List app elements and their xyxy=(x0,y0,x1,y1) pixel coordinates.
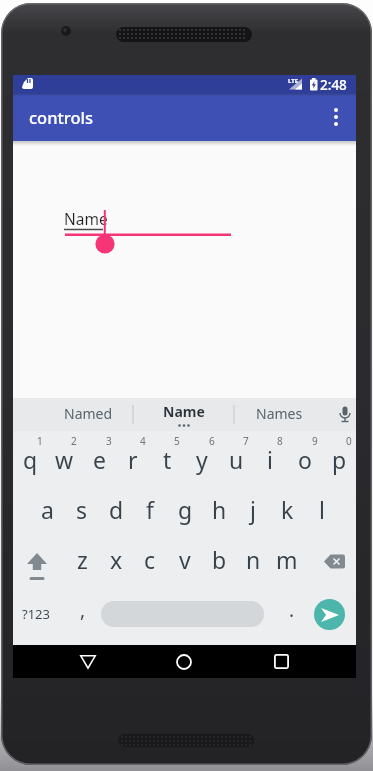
staticText: r xyxy=(128,444,138,475)
staticText: z xyxy=(77,544,88,575)
button[interactable]: k xyxy=(270,487,304,535)
staticText: ?123 xyxy=(22,605,50,623)
button[interactable]: Named xyxy=(13,398,133,431)
staticText: y xyxy=(196,444,208,475)
staticText: j xyxy=(250,494,256,525)
staticText: Names xyxy=(256,404,303,423)
staticText: b xyxy=(212,544,227,575)
button[interactable]: n xyxy=(236,537,270,585)
staticText: 8 xyxy=(277,434,283,448)
button[interactable]: j xyxy=(236,487,270,535)
button[interactable]: t xyxy=(150,437,184,485)
staticText: 2 xyxy=(71,434,77,448)
staticText: . xyxy=(289,597,295,623)
button[interactable] xyxy=(310,537,358,585)
button[interactable]: . xyxy=(275,589,309,639)
staticText: 4 xyxy=(140,434,146,448)
button[interactable]: m xyxy=(270,537,304,585)
button[interactable] xyxy=(314,599,345,630)
button[interactable]: o xyxy=(288,437,322,485)
staticText: h xyxy=(212,494,227,525)
button[interactable] xyxy=(160,645,208,678)
button[interactable] xyxy=(316,93,356,141)
staticText: 2:48 xyxy=(320,76,347,94)
button[interactable]: c xyxy=(133,537,167,585)
staticText: q xyxy=(23,444,38,475)
staticText: Name xyxy=(163,402,205,421)
button[interactable] xyxy=(64,645,112,678)
staticText: 7 xyxy=(243,434,249,448)
staticText: controls xyxy=(29,106,94,128)
staticText: 3 xyxy=(106,434,112,448)
staticText: x xyxy=(110,544,123,575)
staticText: k xyxy=(281,494,294,525)
button[interactable]: l xyxy=(305,487,339,535)
button[interactable]: f xyxy=(133,487,167,535)
button[interactable]: w xyxy=(47,437,81,485)
button[interactable]: g xyxy=(168,487,202,535)
staticText: LTE xyxy=(288,77,299,85)
button[interactable]: i xyxy=(253,437,287,485)
button[interactable]: x xyxy=(99,537,133,585)
button[interactable]: v xyxy=(168,537,202,585)
button[interactable]: p xyxy=(322,437,356,485)
staticText: Name xyxy=(64,208,108,229)
staticText: g xyxy=(178,494,193,525)
staticText: n xyxy=(246,544,261,575)
staticText: c xyxy=(144,544,156,575)
button[interactable]: b xyxy=(202,537,236,585)
button[interactable] xyxy=(101,601,264,627)
staticText: f xyxy=(146,494,154,525)
button[interactable]: , xyxy=(66,589,100,639)
staticText: p xyxy=(332,444,347,475)
button[interactable] xyxy=(257,645,305,678)
button[interactable]: a xyxy=(30,487,64,535)
button[interactable]: q xyxy=(13,437,47,485)
staticText: 9 xyxy=(312,434,318,448)
button[interactable]: Name xyxy=(64,205,245,253)
button[interactable]: r xyxy=(116,437,150,485)
button[interactable]: y xyxy=(185,437,219,485)
button[interactable] xyxy=(334,398,356,431)
staticText: 0 xyxy=(346,434,352,448)
button[interactable]: Name xyxy=(133,398,234,431)
staticText: t xyxy=(163,444,172,475)
staticText: u xyxy=(229,444,244,475)
button[interactable]: z xyxy=(65,537,99,585)
staticText: 1 xyxy=(37,434,43,448)
staticText: w xyxy=(55,444,74,475)
button[interactable]: Names xyxy=(234,398,334,431)
staticText: 5 xyxy=(174,434,180,448)
staticText: 6 xyxy=(209,434,215,448)
button[interactable]: ?123 xyxy=(13,589,59,639)
staticText: e xyxy=(93,444,106,475)
button[interactable]: e xyxy=(82,437,116,485)
button[interactable] xyxy=(13,537,61,585)
staticText: i xyxy=(267,444,273,475)
button[interactable]: d xyxy=(99,487,133,535)
button[interactable]: s xyxy=(65,487,99,535)
staticText: s xyxy=(76,494,88,525)
staticText: , xyxy=(80,597,86,623)
staticText: a xyxy=(41,494,54,525)
staticText: v xyxy=(179,544,191,575)
button[interactable]: h xyxy=(202,487,236,535)
button[interactable]: u xyxy=(219,437,253,485)
staticText: m xyxy=(276,544,298,575)
staticText: Named xyxy=(64,404,113,423)
staticText: o xyxy=(298,444,312,475)
staticText: l xyxy=(319,494,325,525)
staticText: d xyxy=(109,494,124,525)
